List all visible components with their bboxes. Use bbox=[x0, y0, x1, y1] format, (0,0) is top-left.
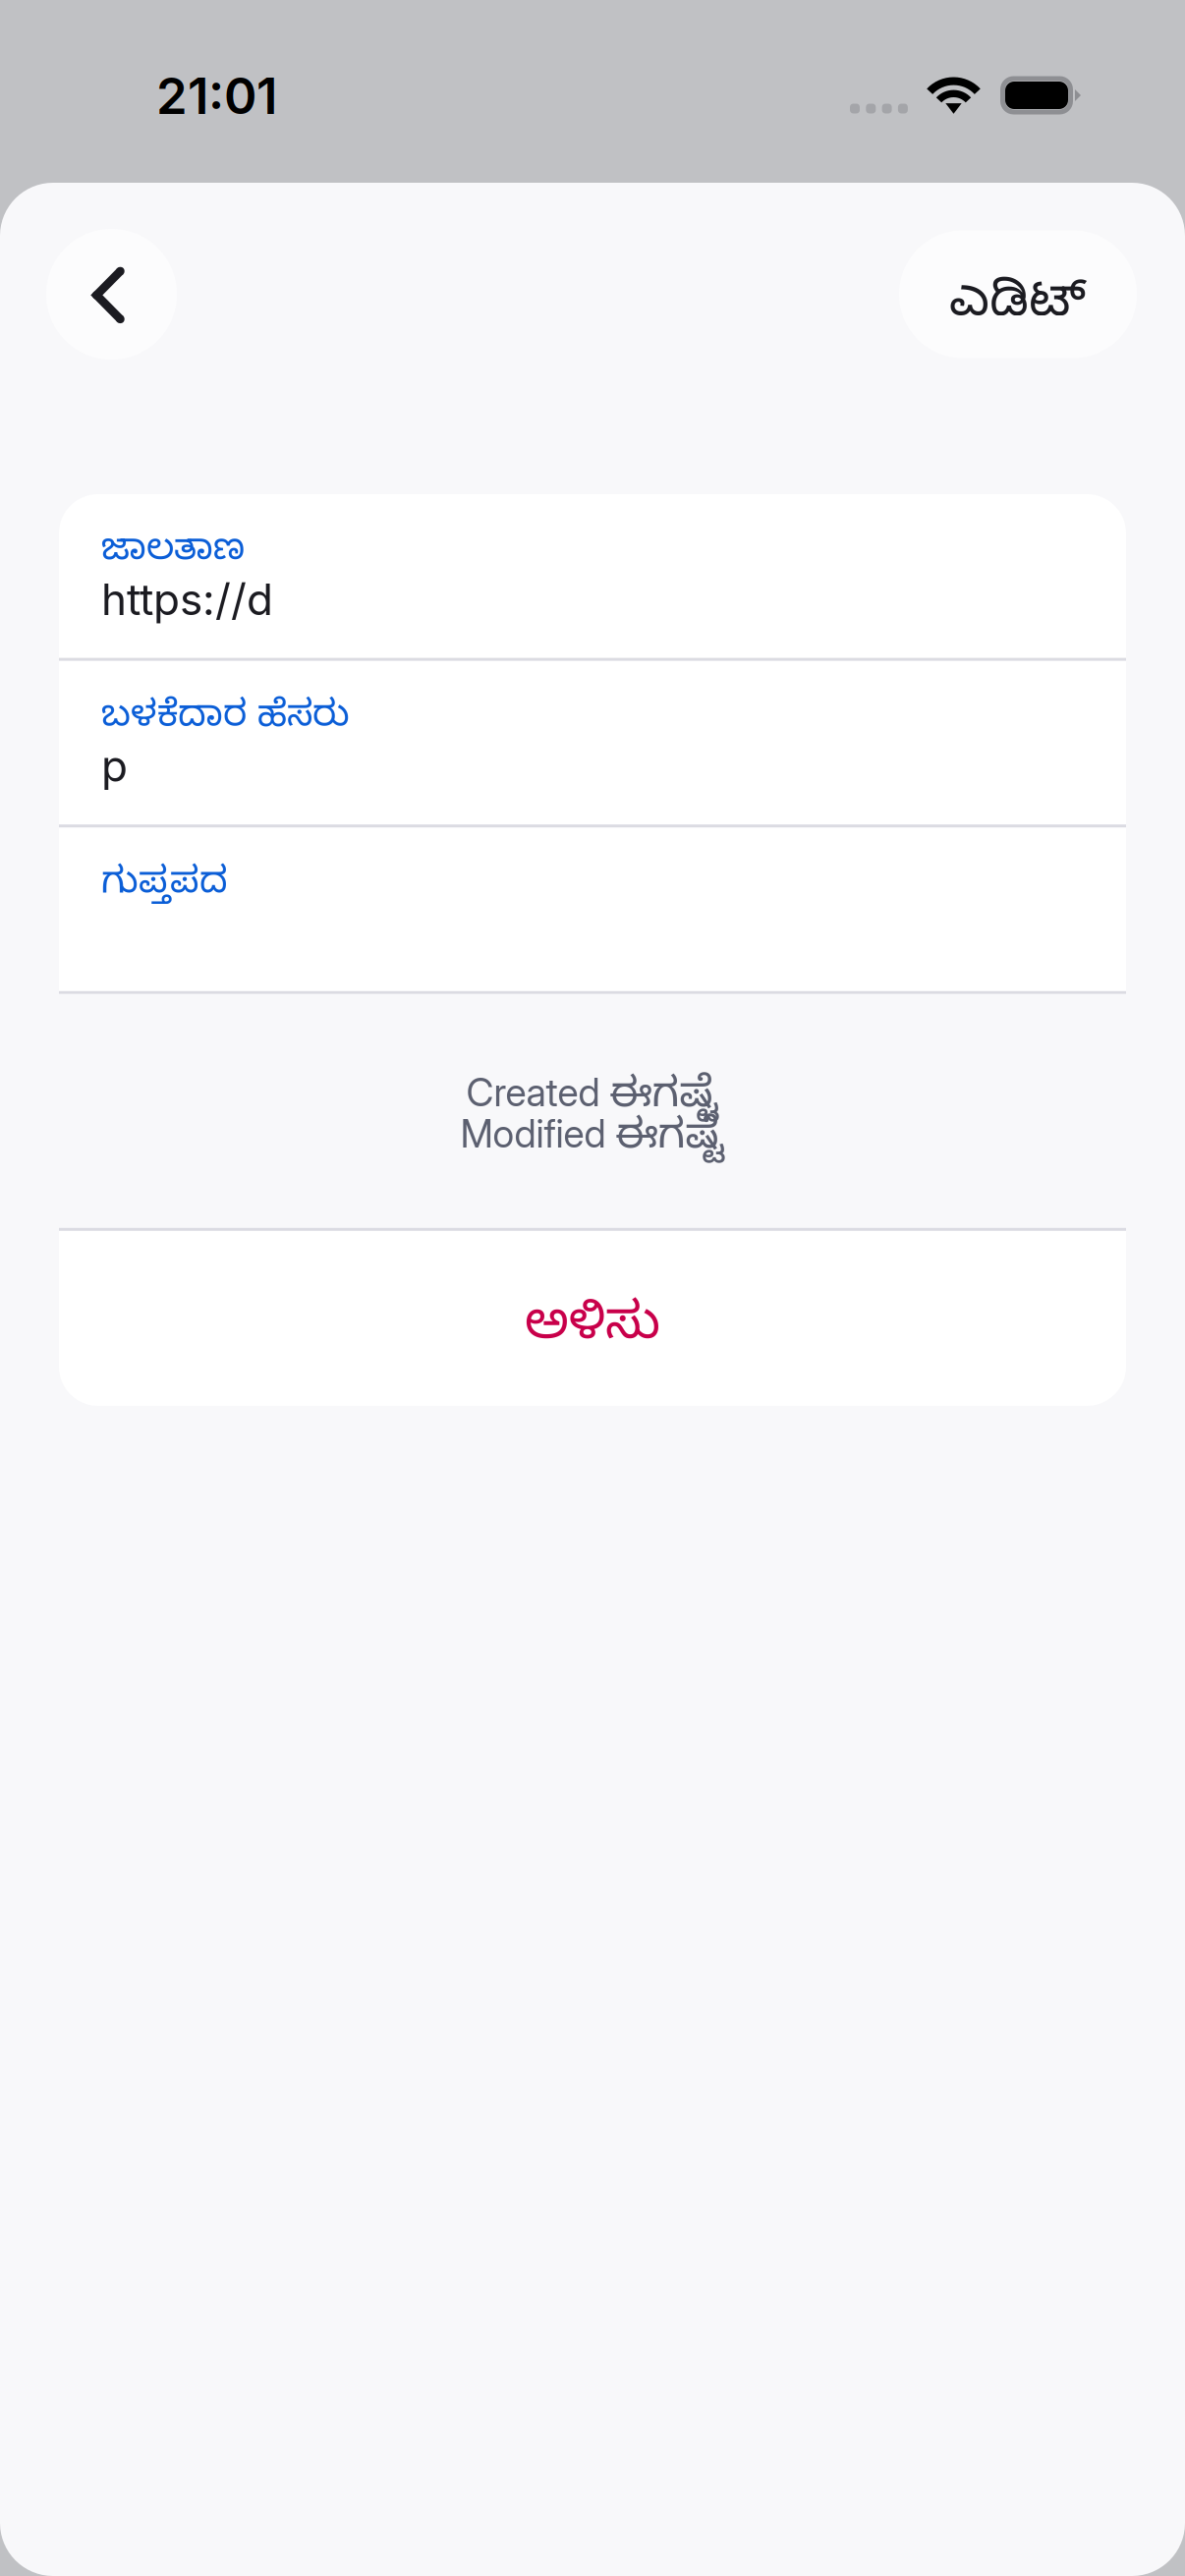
staticText: https://d bbox=[101, 573, 273, 625]
staticText: p bbox=[101, 740, 128, 792]
staticText: ಬಳಕೆದಾರ ಹೆಸರು bbox=[101, 696, 350, 746]
staticText: Created ಈಗಷ್ಟೆ bbox=[466, 1070, 719, 1128]
staticText: Modified ಈಗಷ್ಟೆ bbox=[460, 1111, 725, 1170]
button[interactable]: ಬಳಕೆದಾರ ಹೆಸರು bbox=[59, 661, 1126, 824]
button[interactable]: ಅಳಿಸು bbox=[59, 1231, 1126, 1406]
button[interactable]: ಗುಪ್ತಪದ bbox=[59, 827, 1126, 991]
staticText: ಜಾಲತಾಣ bbox=[101, 530, 245, 579]
button[interactable]: ಜಾಲತಾಣ bbox=[59, 494, 1126, 658]
staticText: ಗುಪ್ತಪದ bbox=[101, 863, 228, 912]
button[interactable]: Back bbox=[46, 229, 177, 360]
staticText: 21:01 bbox=[156, 66, 277, 126]
staticText: ಅಳಿಸು bbox=[525, 1297, 660, 1366]
button[interactable]: ಎಡಿಟ್ bbox=[899, 230, 1137, 358]
staticText: ಎಡಿಟ್ bbox=[949, 274, 1087, 342]
